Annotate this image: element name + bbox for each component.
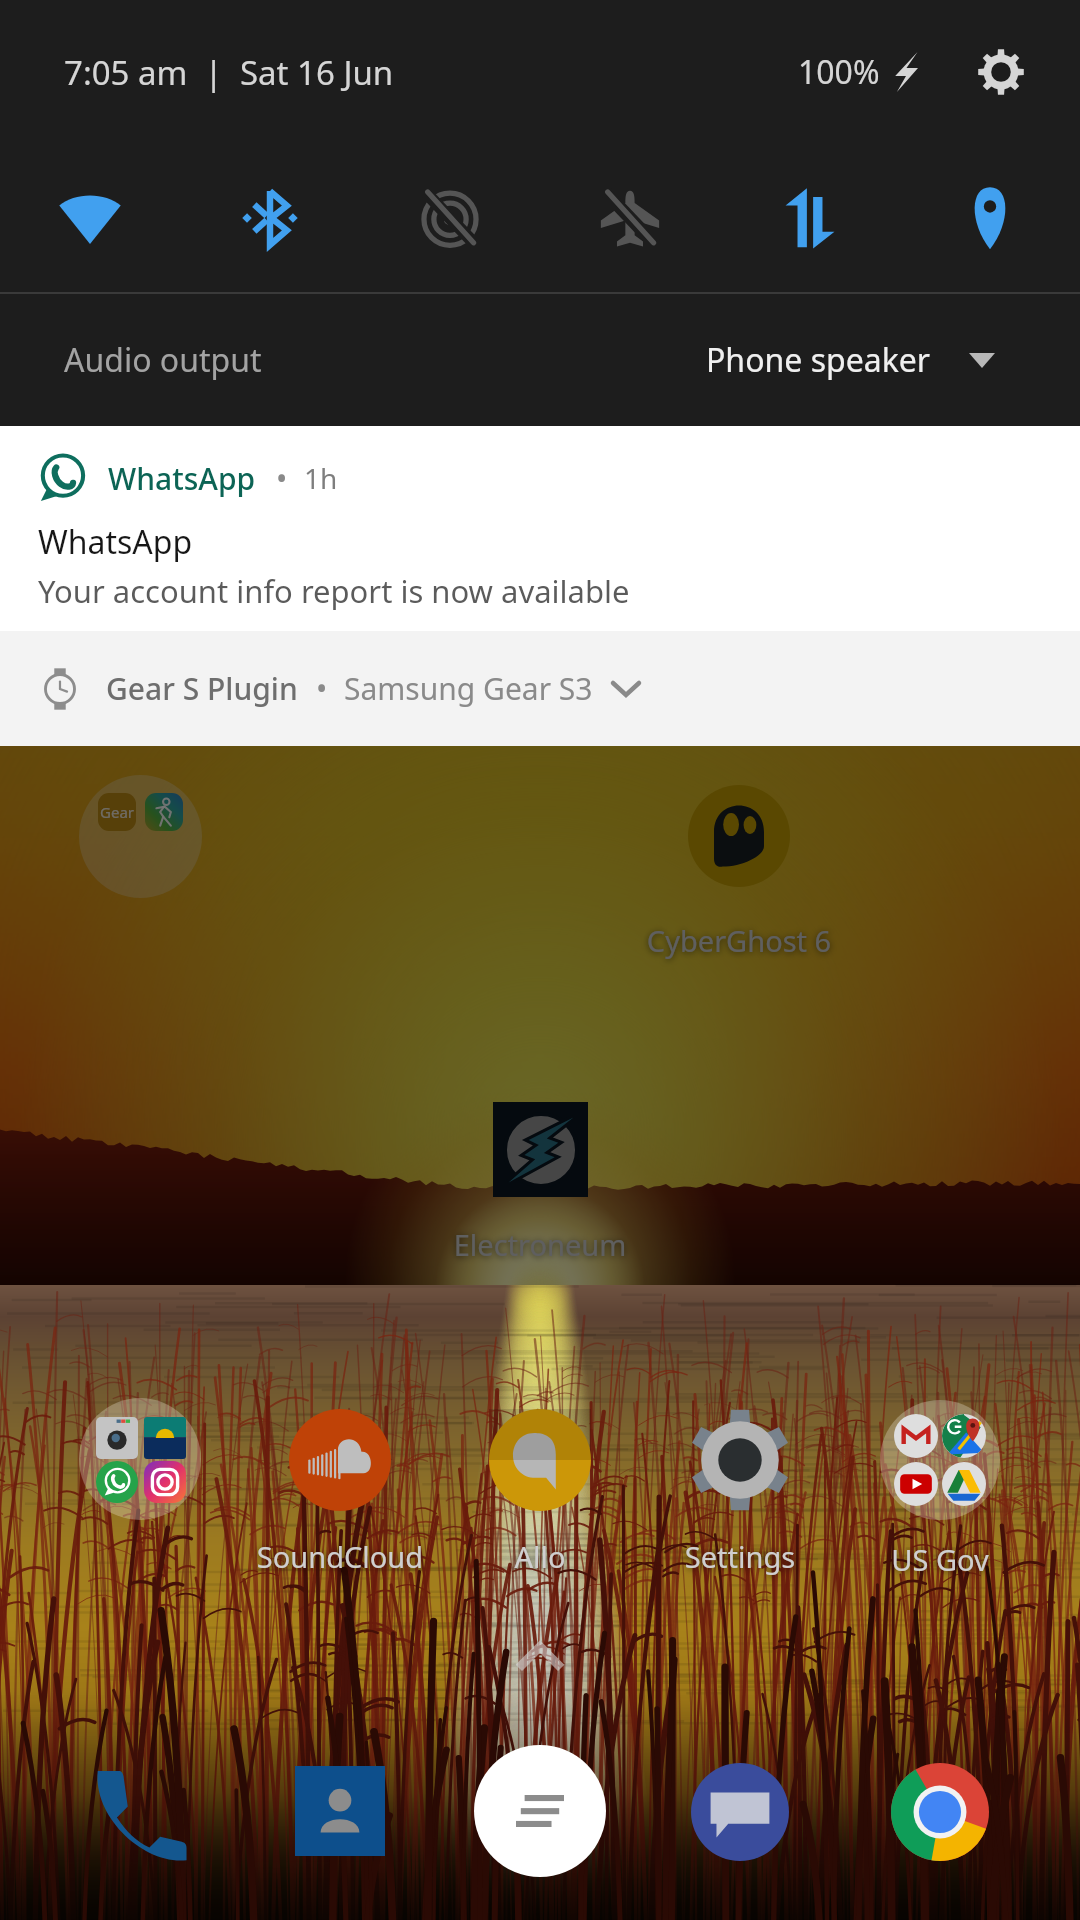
button[interactable]: Settings [640,1409,840,1629]
button[interactable]: Settings [970,41,1032,103]
staticText: Electroneum [440,1225,640,1264]
button[interactable]: Messages [690,1763,790,1863]
button[interactable]: Location [900,144,1080,292]
button[interactable]: Wi-Fi [0,144,180,292]
staticText: Settings [640,1537,840,1576]
button[interactable]: App folder [40,1398,240,1608]
button[interactable]: CyberGhost 6 [639,785,839,1015]
button[interactable]: SoundCloud [240,1409,440,1629]
staticText: Samsung Gear S3 [344,668,593,709]
button[interactable]: Contacts [294,1766,386,1858]
staticText: Allo [440,1537,640,1576]
staticText: Your account info report is now availabl… [38,570,630,612]
staticText: CyberGhost 6 [639,921,839,960]
staticText: US Gov [840,1540,1040,1579]
staticText: • [276,458,288,499]
staticText: Audio output [64,338,262,382]
button[interactable]: Chrome [890,1763,990,1863]
staticText: Gear S Plugin [106,668,298,709]
button[interactable]: App drawer [474,1745,606,1877]
button[interactable]: Airplane mode [540,144,720,292]
button[interactable]: US Gov [840,1400,1040,1620]
staticText: 100% [798,50,880,94]
staticText: • [316,668,328,709]
button[interactable]: Phone speaker [706,328,995,392]
button[interactable]: WhatsApp [0,426,1080,631]
staticText: WhatsApp [38,520,193,564]
button[interactable]: Allo [440,1409,640,1629]
staticText: Gear [100,802,134,822]
staticText: 7:05 am | Sat 16 Jun [64,50,394,95]
button[interactable]: Phone [93,1769,187,1863]
button[interactable]: Sound off [360,144,540,292]
button[interactable]: Mobile data [720,144,900,292]
button[interactable]: Electroneum [440,1102,640,1332]
button[interactable]: Gear folder [79,775,202,898]
staticText: WhatsApp [108,458,256,499]
staticText: Phone speaker [706,338,931,382]
staticText: SoundCloud [240,1537,440,1576]
button[interactable]: Gear S Plugin [0,631,1080,746]
staticText: 1h [304,459,338,497]
button[interactable]: Bluetooth [180,144,360,292]
